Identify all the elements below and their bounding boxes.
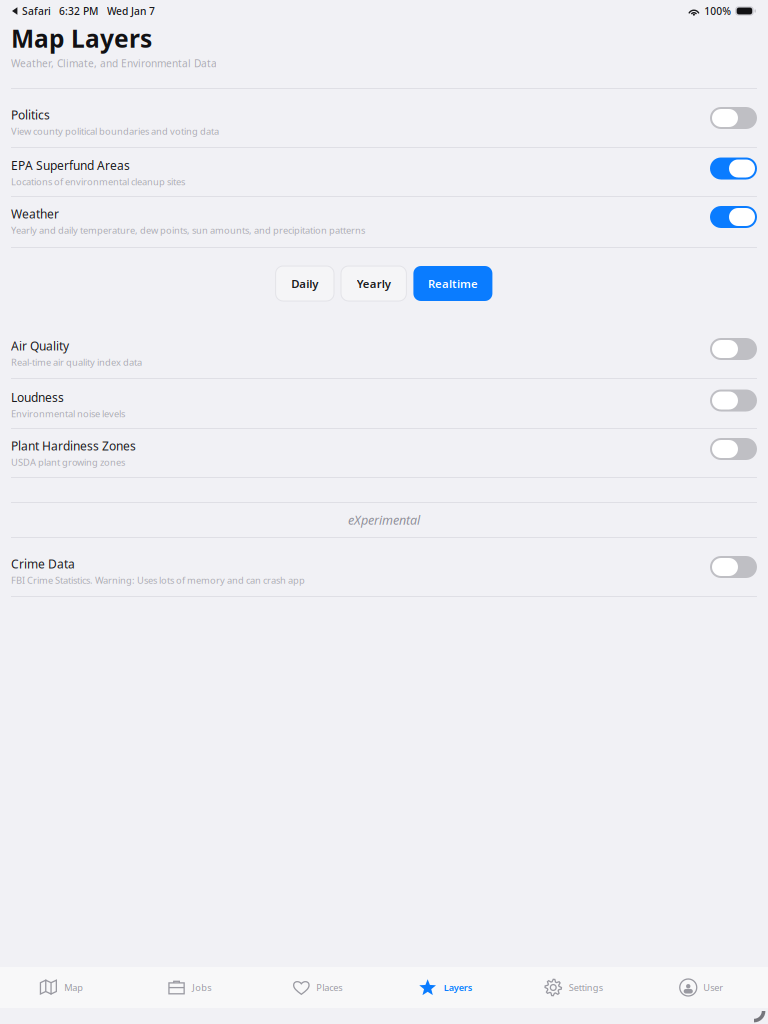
staticText: Plant Hardiness Zones — [11, 438, 136, 454]
button[interactable]: Plant Hardiness Zones — [0, 429, 768, 477]
button[interactable]: EPA Superfund Areas — [0, 148, 768, 196]
button[interactable]: Jobs — [128, 967, 256, 1008]
staticText: Environmental noise levels — [11, 407, 125, 420]
staticText: Weather, Climate, and Environmental Data — [11, 57, 217, 70]
button[interactable]: Weather — [0, 197, 768, 247]
staticText: Politics — [11, 107, 50, 123]
button[interactable]: Settings — [512, 967, 640, 1008]
staticText: EPA Superfund Areas — [11, 157, 130, 173]
button[interactable]: Crime Data — [0, 538, 768, 596]
staticText: Weather — [11, 206, 59, 222]
button[interactable]: Map — [0, 967, 128, 1008]
staticText: Map — [64, 981, 83, 994]
staticText: Safari — [22, 4, 51, 18]
button[interactable]: Loudness — [0, 379, 768, 428]
staticText: Yearly and daily temperature, dew points… — [11, 224, 365, 236]
button[interactable]: Places — [256, 967, 384, 1008]
staticText: Locations of environmental cleanup sites — [11, 175, 185, 188]
button[interactable]: Layers — [384, 967, 512, 1008]
staticText: User — [703, 981, 723, 994]
staticText: Loudness — [11, 389, 64, 405]
staticText: 100% — [704, 4, 731, 18]
button[interactable]: Yearly — [341, 266, 406, 301]
button[interactable]: Air Quality — [0, 329, 768, 378]
staticText: View county political boundaries and vot… — [11, 125, 219, 137]
staticText: 6:32 PM — [59, 4, 98, 18]
staticText: Wed Jan 7 — [107, 4, 155, 18]
button[interactable]: User — [640, 967, 768, 1008]
staticText: Real-time air quality index data — [11, 356, 142, 368]
staticText: Layers — [444, 981, 473, 994]
staticText: Places — [316, 981, 342, 994]
staticText: Air Quality — [11, 338, 69, 354]
staticText: eXperimental — [348, 512, 420, 528]
staticText: Crime Data — [11, 556, 75, 572]
staticText: Yearly — [357, 276, 391, 291]
staticText: Jobs — [192, 981, 211, 994]
staticText: Map Layers — [11, 22, 152, 55]
button[interactable]: Politics — [0, 89, 768, 147]
staticText: Realtime — [428, 276, 478, 291]
button[interactable]: Realtime — [413, 266, 492, 301]
staticText: FBI Crime Statistics. Warning: Uses lots… — [11, 574, 305, 586]
staticText: Daily — [291, 276, 318, 291]
button[interactable]: Daily — [276, 266, 334, 301]
staticText: USDA plant growing zones — [11, 456, 125, 468]
staticText: Settings — [569, 981, 603, 994]
